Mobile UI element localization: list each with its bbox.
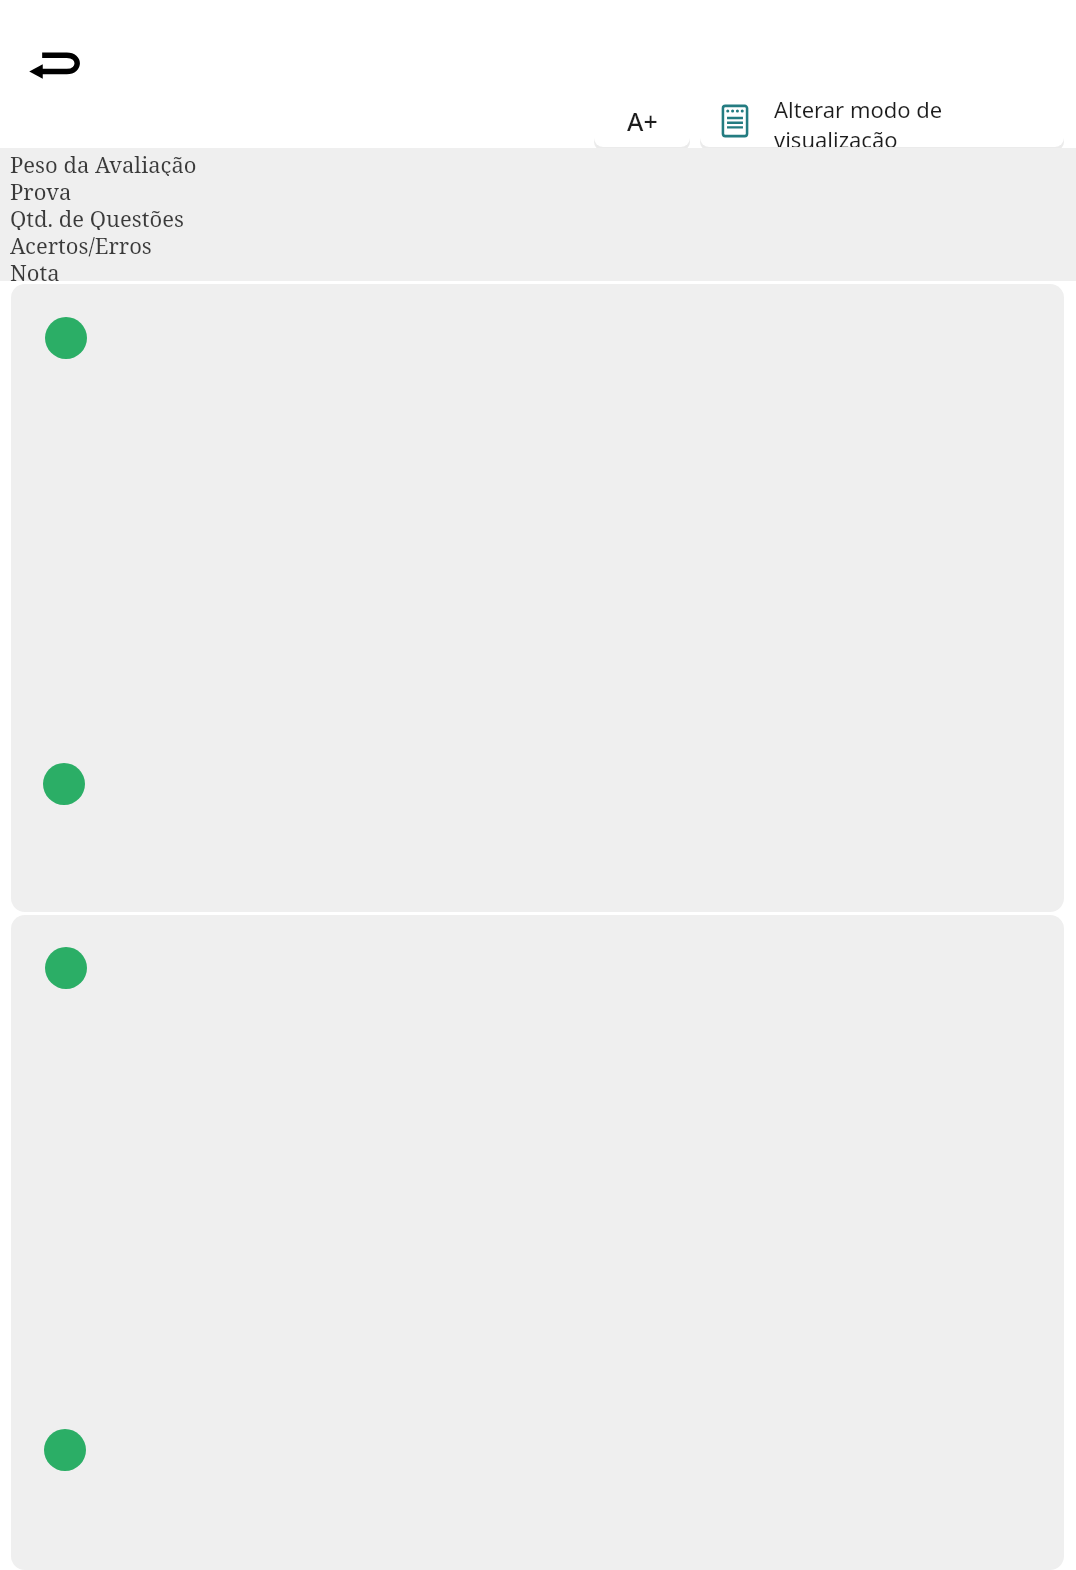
staticText: Peso da Avaliação xyxy=(10,149,197,176)
staticText: Alterar modo de visualização xyxy=(774,94,1064,147)
staticText: A+ xyxy=(627,104,658,138)
button[interactable] xyxy=(11,284,1064,912)
button[interactable]: Voltar xyxy=(22,36,86,100)
button[interactable]: A+ xyxy=(594,94,690,147)
staticText: Nota xyxy=(10,257,60,282)
staticText: Qtd. de Questões xyxy=(10,203,184,230)
button[interactable] xyxy=(11,915,1064,1570)
button[interactable]: Alterar modo de visualização xyxy=(700,94,1064,147)
staticText: Prova xyxy=(10,176,72,203)
staticText: Acertos/Erros xyxy=(10,230,152,257)
